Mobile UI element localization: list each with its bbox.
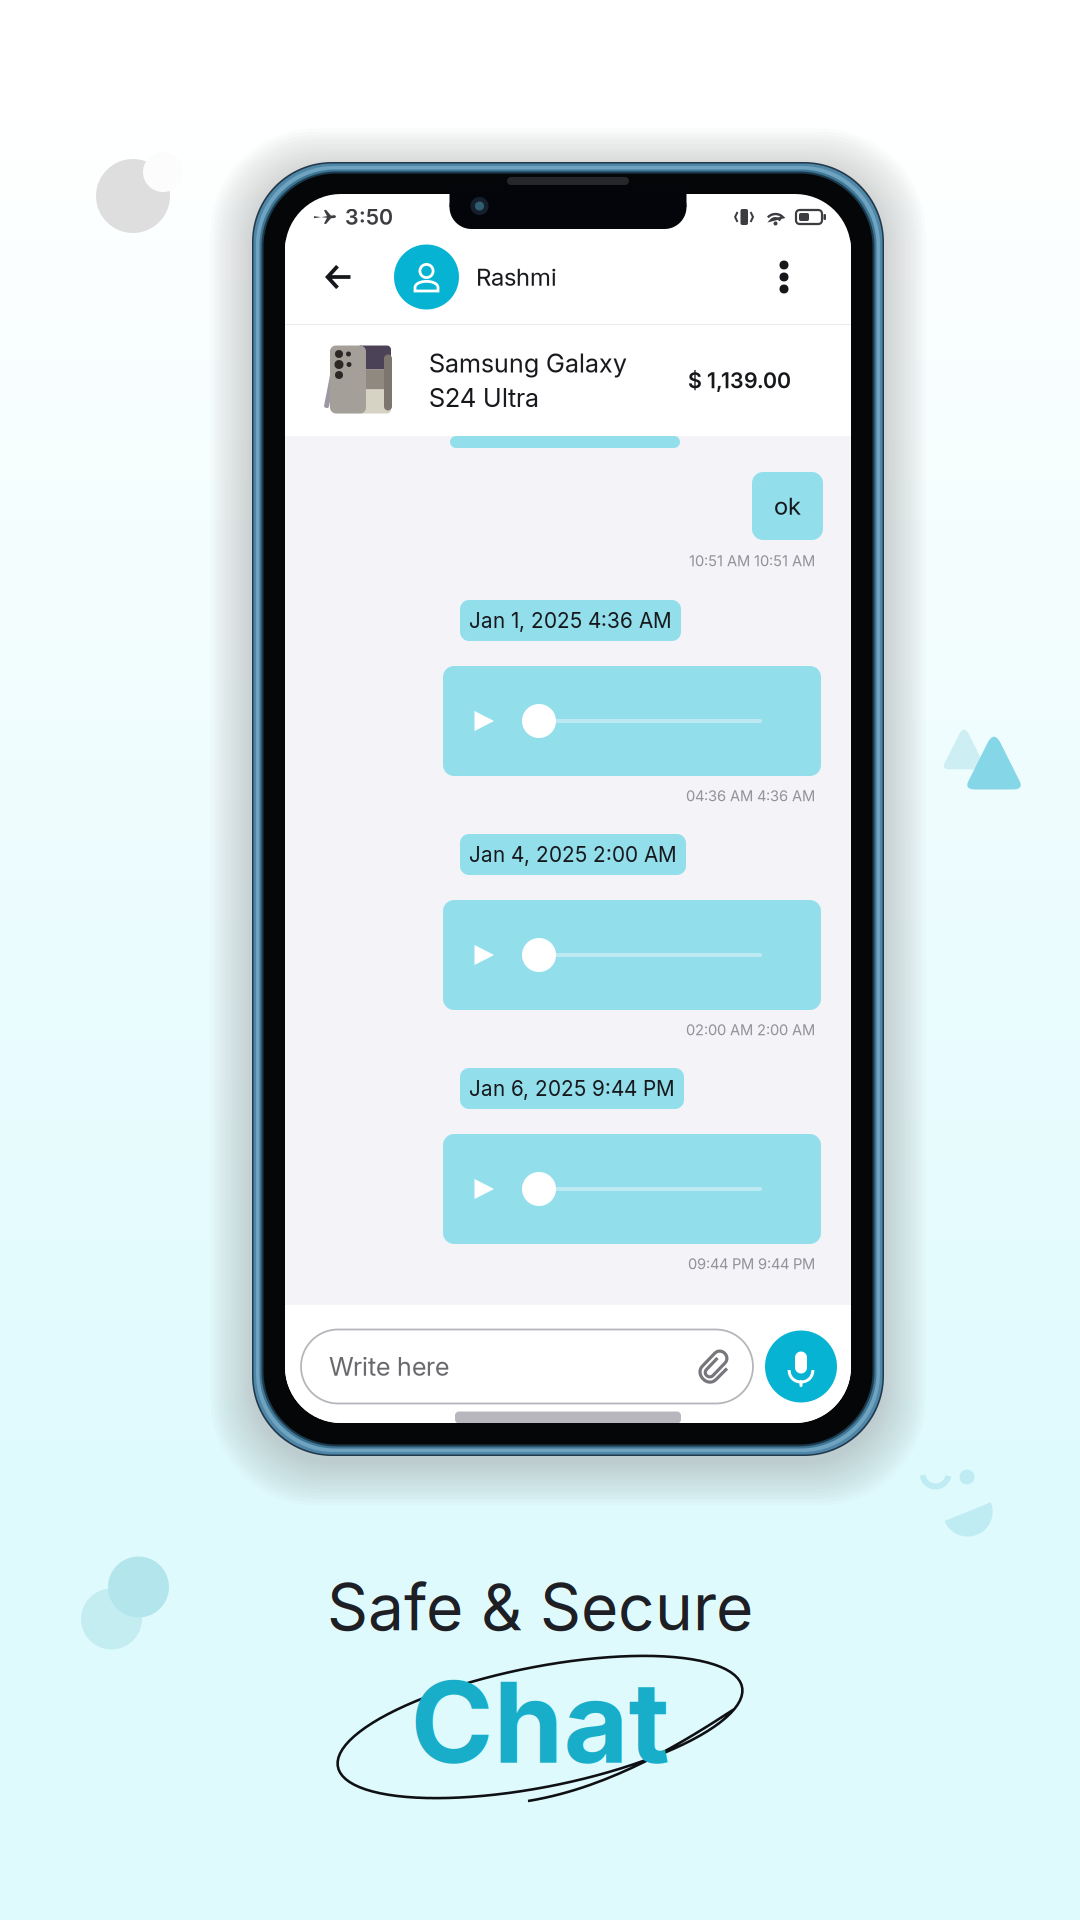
staticText: Jan 1, 2025 4:36 AM <box>469 608 672 633</box>
staticText: 3:50 <box>345 204 393 230</box>
staticText: Chat <box>410 1654 669 1790</box>
staticText: 10:51 AM 10:51 AM <box>689 552 815 570</box>
staticText: Write here <box>329 1351 449 1382</box>
button[interactable]: Rashmi <box>365 244 557 309</box>
button[interactable]: Back <box>313 244 365 310</box>
staticText: Samsung Galaxy <box>429 348 627 378</box>
staticText: 02:00 AM 2:00 AM <box>686 1021 815 1039</box>
button[interactable]: Write here <box>301 1329 753 1403</box>
staticText: 09:44 PM 9:44 PM <box>688 1255 815 1273</box>
staticText: Safe & Secure <box>327 1568 753 1646</box>
staticText: Jan 4, 2025 2:00 AM <box>469 842 677 867</box>
staticText: S24 Ultra <box>429 382 539 413</box>
staticText: $ 1,139.00 <box>688 368 791 393</box>
button[interactable]: More options <box>764 244 804 310</box>
staticText: Jan 6, 2025 9:44 PM <box>469 1076 675 1101</box>
button[interactable]: Record voice message <box>765 1330 837 1402</box>
staticText: ok <box>774 491 801 520</box>
staticText: 04:36 AM 4:36 AM <box>686 787 815 805</box>
staticText: Rashmi <box>476 262 557 291</box>
